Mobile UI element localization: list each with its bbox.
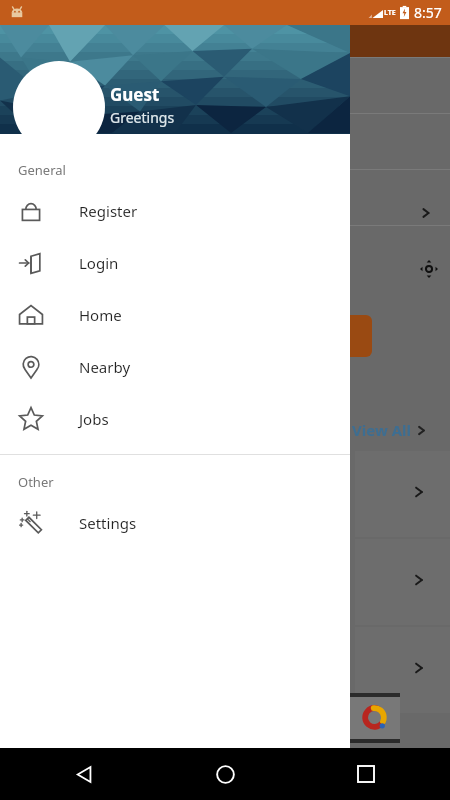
button[interactable]: Settings xyxy=(0,497,350,549)
button[interactable]: Nearby xyxy=(0,341,350,393)
button[interactable]: Recents xyxy=(346,754,386,794)
staticText: Greetings xyxy=(110,108,175,127)
staticText: Home xyxy=(79,305,122,325)
staticText: Settings xyxy=(79,513,137,533)
staticText: 8:57 xyxy=(414,3,442,22)
staticText: LTE xyxy=(384,8,396,18)
staticText: Jobs xyxy=(79,409,109,429)
staticText: Register xyxy=(79,201,138,221)
staticText: Login xyxy=(79,253,119,273)
staticText: Nearby xyxy=(79,357,131,377)
button[interactable]: Register xyxy=(0,185,350,237)
staticText: General xyxy=(18,161,66,179)
staticText: Other xyxy=(18,473,54,491)
button[interactable]: Home xyxy=(0,289,350,341)
button[interactable]: Home xyxy=(205,754,245,794)
button[interactable]: Login xyxy=(0,237,350,289)
button[interactable]: Jobs xyxy=(0,393,350,445)
staticText: Guest xyxy=(110,83,160,106)
button[interactable]: Back xyxy=(64,754,104,794)
staticText: View All xyxy=(352,420,411,440)
